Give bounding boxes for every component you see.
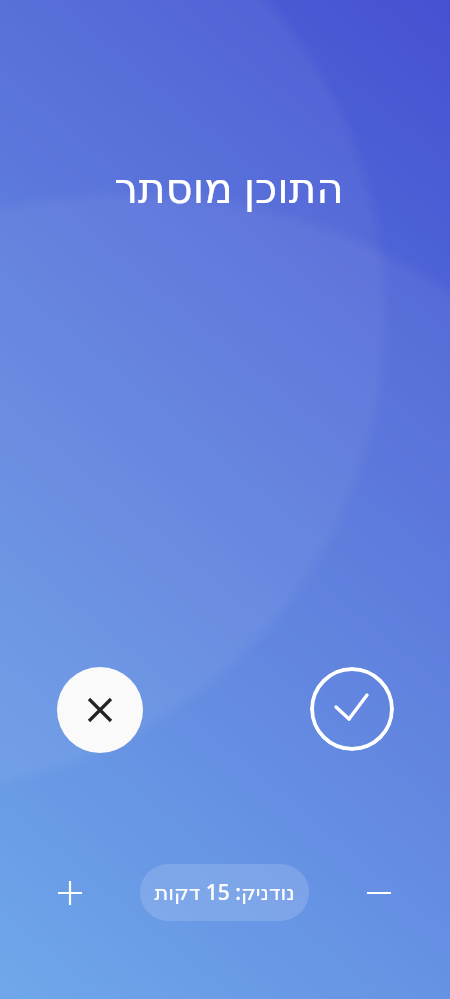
button[interactable]: נודניק: 15 דקות bbox=[140, 864, 309, 921]
button[interactable]: Dismiss bbox=[57, 667, 143, 753]
button[interactable]: Increase snooze time bbox=[46, 869, 94, 917]
button[interactable]: Decrease snooze time bbox=[355, 869, 403, 917]
staticText: התוכן מוסתר bbox=[114, 158, 344, 215]
staticText: נודניק: 15 דקות bbox=[154, 878, 295, 907]
button[interactable]: Confirm bbox=[310, 667, 394, 751]
